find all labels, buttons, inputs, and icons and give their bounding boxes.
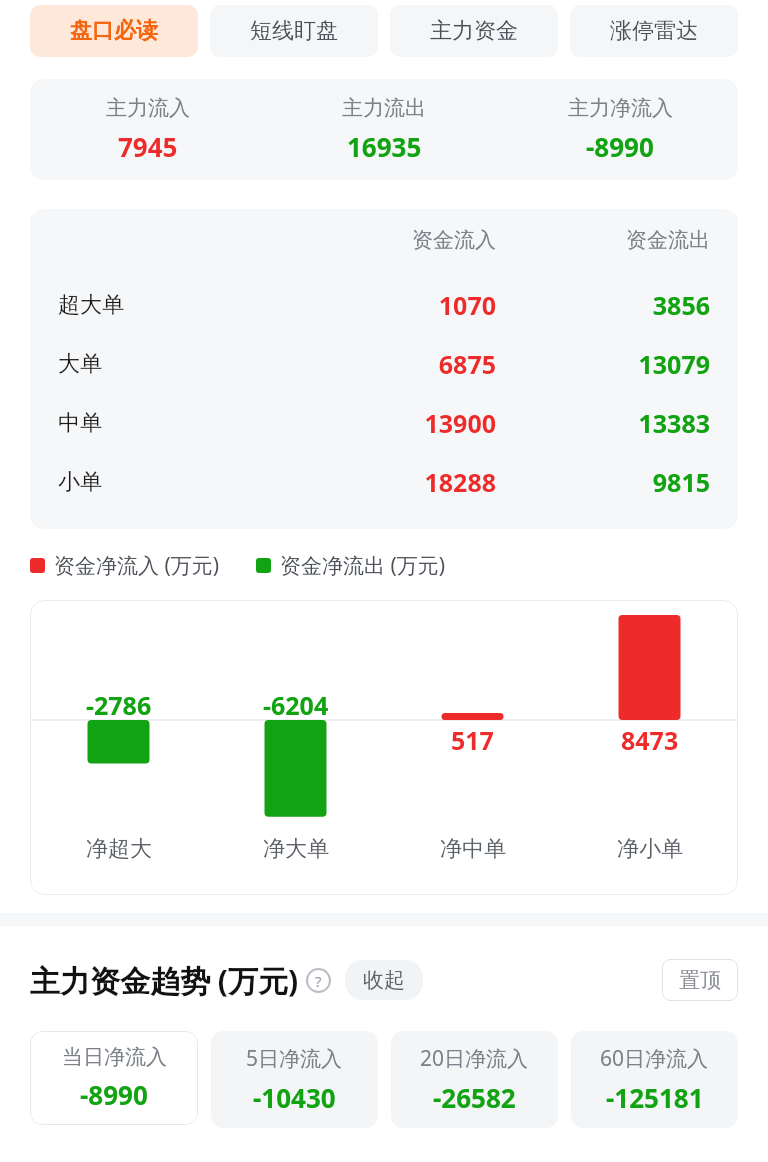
staticText: 净超大: [86, 835, 152, 863]
staticText: 13900: [282, 406, 496, 440]
staticText: 短线盯盘: [250, 17, 338, 45]
staticText: 净小单: [617, 835, 683, 863]
staticText: 资金净流入 (万元): [54, 551, 220, 580]
button[interactable]: 20日净流入: [391, 1031, 558, 1128]
staticText: 20日净流入: [420, 1044, 529, 1073]
staticText: 8473: [621, 723, 679, 757]
button[interactable]: 60日净流入: [571, 1031, 738, 1128]
button[interactable]: 当日净流入: [30, 1031, 198, 1125]
staticText: 收起: [363, 967, 405, 993]
staticText: 盘口必读: [70, 17, 158, 45]
staticText: 13383: [496, 406, 710, 440]
staticText: 涨停雷达: [610, 17, 698, 45]
staticText: 主力资金: [430, 17, 518, 45]
staticText: ?: [315, 971, 322, 991]
button[interactable]: 涨停雷达: [570, 5, 738, 57]
staticText: 资金流出: [496, 227, 710, 253]
staticText: 置顶: [679, 967, 721, 993]
button[interactable]: 盘口必读: [30, 5, 198, 57]
staticText: -10430: [253, 1080, 336, 1115]
staticText: 主力流入: [106, 95, 190, 121]
staticText: 7945: [118, 129, 178, 164]
staticText: -6204: [263, 688, 329, 722]
staticText: 主力流出: [342, 95, 426, 121]
staticText: 1070: [282, 288, 496, 322]
staticText: 13079: [496, 347, 710, 381]
staticText: 9815: [496, 465, 710, 499]
button[interactable]: 置顶: [662, 959, 738, 1001]
staticText: 16935: [347, 129, 422, 164]
staticText: -26582: [433, 1080, 516, 1115]
staticText: 资金净流出 (万元): [280, 551, 446, 580]
button[interactable]: 主力资金: [390, 5, 558, 57]
staticText: 净中单: [440, 835, 506, 863]
staticText: -8990: [80, 1077, 148, 1112]
staticText: -8990: [586, 129, 654, 164]
staticText: 中单: [58, 409, 282, 437]
button[interactable]: 短线盯盘: [210, 5, 378, 57]
staticText: 6875: [282, 347, 496, 381]
staticText: 3856: [496, 288, 710, 322]
staticText: 主力资金趋势 (万元): [30, 960, 299, 1001]
staticText: -2786: [86, 688, 152, 722]
staticText: 517: [451, 723, 494, 757]
staticText: 净大单: [263, 835, 329, 863]
staticText: 18288: [282, 465, 496, 499]
staticText: 主力净流入: [568, 95, 673, 121]
staticText: 大单: [58, 350, 282, 378]
staticText: 超大单: [58, 291, 282, 319]
staticText: 5日净流入: [246, 1044, 343, 1073]
button[interactable]: 帮助说明: [306, 968, 331, 993]
staticText: 当日净流入: [62, 1044, 167, 1070]
button[interactable]: 收起: [345, 960, 423, 1000]
button[interactable]: 主力流入: [30, 79, 738, 180]
staticText: 60日净流入: [600, 1044, 709, 1073]
staticText: 资金流入: [282, 227, 496, 253]
staticText: 小单: [58, 468, 282, 496]
button[interactable]: 5日净流入: [211, 1031, 378, 1128]
staticText: -125181: [606, 1080, 704, 1115]
